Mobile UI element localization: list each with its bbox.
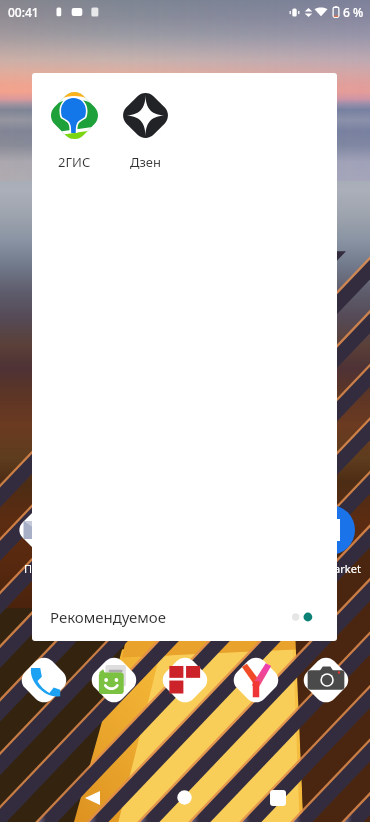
button[interactable]: 2ГИС — [39, 87, 110, 171]
button[interactable]: Apps — [158, 653, 212, 707]
button[interactable]: Recents — [253, 773, 302, 822]
button[interactable]: Messages — [87, 653, 141, 707]
button[interactable]: Camera — [299, 653, 353, 707]
staticText: Рекомендуемое — [50, 607, 167, 627]
staticText: 00:41 — [8, 4, 39, 20]
button[interactable]: Дзен — [110, 87, 181, 171]
staticText: Play Market — [300, 561, 361, 576]
button[interactable]: Yandex — [229, 653, 283, 707]
button[interactable]: Home — [160, 773, 209, 822]
staticText: Почта — [24, 561, 57, 576]
button[interactable]: Phone — [17, 653, 71, 707]
staticText: Дзен — [130, 153, 161, 171]
staticText: 2ГИС — [58, 153, 91, 171]
button[interactable]: Back — [68, 773, 117, 822]
staticText: 6 % — [343, 4, 364, 20]
